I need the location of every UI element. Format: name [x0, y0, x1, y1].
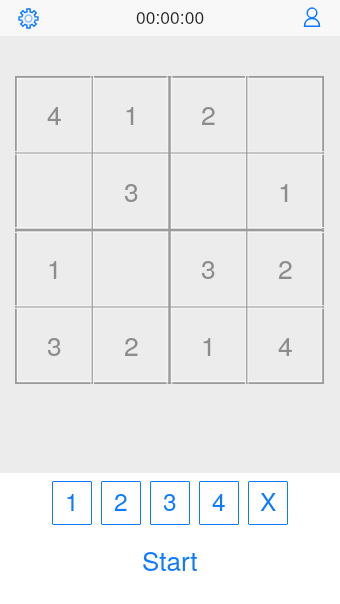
button[interactable]: 4	[247, 307, 324, 384]
staticText: 2	[201, 95, 216, 133]
staticText: 1	[47, 249, 62, 287]
button[interactable]: X	[248, 481, 288, 525]
button[interactable]	[93, 230, 170, 307]
staticText: 3	[124, 172, 139, 210]
button[interactable]: 1	[247, 153, 324, 230]
staticText: 1	[124, 95, 139, 133]
staticText: 1	[201, 326, 216, 364]
button[interactable]: Profile	[283, 0, 340, 36]
staticText: 2	[114, 483, 128, 518]
button[interactable]: Start	[130, 535, 210, 584]
button[interactable]: 4	[15, 76, 93, 153]
button[interactable]: 2	[101, 481, 141, 525]
button[interactable]: 1	[15, 230, 93, 307]
staticText: 3	[47, 326, 62, 364]
staticText: 3	[201, 249, 216, 287]
button[interactable]: 3	[93, 153, 170, 230]
button[interactable]: 3	[15, 307, 93, 384]
button[interactable]: 1	[93, 76, 170, 153]
button[interactable]: 2	[170, 76, 247, 153]
button[interactable]	[15, 153, 93, 230]
button[interactable]: Settings	[0, 0, 57, 36]
staticText: 3	[163, 483, 177, 518]
staticText: Start	[142, 541, 198, 578]
button[interactable]: 2	[93, 307, 170, 384]
staticText: 1	[278, 172, 293, 210]
button[interactable]	[170, 153, 247, 230]
staticText: X	[260, 483, 277, 518]
staticText: 4	[47, 95, 62, 133]
staticText: 2	[124, 326, 139, 364]
staticText: 00:00:00	[136, 4, 205, 29]
button[interactable]: 2	[247, 230, 324, 307]
staticText: 2	[278, 249, 293, 287]
button[interactable]: 4	[199, 481, 239, 525]
staticText: 1	[65, 483, 79, 518]
button[interactable]: 1	[170, 307, 247, 384]
staticText: 4	[212, 483, 226, 518]
button[interactable]: 3	[150, 481, 190, 525]
button[interactable]: 1	[52, 481, 92, 525]
staticText: 4	[278, 326, 293, 364]
button[interactable]: 3	[170, 230, 247, 307]
button[interactable]	[247, 76, 324, 153]
